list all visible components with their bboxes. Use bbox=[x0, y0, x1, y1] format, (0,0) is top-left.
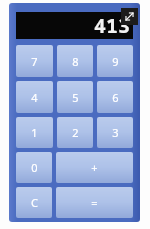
staticText: 1 bbox=[31, 125, 38, 140]
button[interactable]: = bbox=[56, 187, 133, 218]
staticText: = bbox=[91, 195, 98, 210]
staticText: 413 bbox=[94, 12, 130, 39]
staticText: 7 bbox=[31, 54, 38, 69]
button[interactable]: 7 bbox=[16, 45, 53, 77]
button[interactable]: 0 bbox=[16, 152, 52, 183]
button[interactable]: 2 bbox=[57, 117, 93, 148]
staticText: 6 bbox=[112, 90, 119, 105]
staticText: 8 bbox=[72, 54, 79, 69]
staticText: 2 bbox=[72, 125, 79, 140]
button[interactable]: + bbox=[56, 152, 133, 183]
staticText: 9 bbox=[112, 54, 119, 69]
staticText: 4 bbox=[31, 90, 38, 105]
staticText: 3 bbox=[112, 125, 119, 140]
button[interactable]: 6 bbox=[97, 81, 133, 113]
staticText: C bbox=[31, 195, 38, 210]
button[interactable]: 5 bbox=[57, 81, 93, 113]
button[interactable]: 9 bbox=[97, 45, 133, 77]
button[interactable]: 3 bbox=[97, 117, 133, 148]
staticText: + bbox=[91, 160, 98, 175]
button[interactable]: 8 bbox=[57, 45, 93, 77]
button[interactable]: Expand bbox=[121, 8, 138, 25]
button[interactable]: 4 bbox=[16, 81, 53, 113]
staticText: 5 bbox=[72, 90, 79, 105]
staticText: 0 bbox=[31, 160, 38, 175]
button[interactable]: C bbox=[16, 187, 52, 218]
button[interactable]: 1 bbox=[16, 117, 53, 148]
